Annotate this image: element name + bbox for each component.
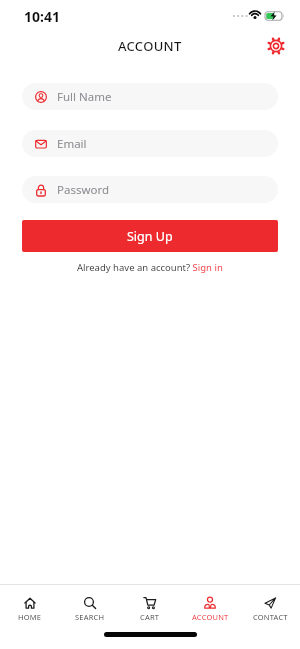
staticText: 10:41 xyxy=(24,7,60,26)
button[interactable]: Password xyxy=(22,176,278,203)
staticText: Full Name xyxy=(57,89,112,105)
button[interactable]: HOME xyxy=(0,585,60,622)
staticText: ACCOUNT xyxy=(118,37,182,55)
button[interactable] xyxy=(265,35,287,57)
button[interactable]: SEARCH xyxy=(60,585,120,622)
staticText: Email xyxy=(57,136,87,152)
staticText: SEARCH xyxy=(75,612,105,622)
button[interactable]: Sign Up xyxy=(22,220,278,252)
staticText: CONTACT xyxy=(253,612,288,622)
button[interactable]: ACCOUNT xyxy=(180,585,240,622)
staticText: CART xyxy=(140,612,160,622)
staticText: Password xyxy=(57,182,110,198)
button[interactable]: Full Name xyxy=(22,83,278,110)
staticText: Already have an account? Sign in xyxy=(77,261,223,274)
button[interactable]: CART xyxy=(120,585,180,622)
staticText: ACCOUNT xyxy=(192,612,229,622)
button[interactable]: Already have an account? Sign in xyxy=(0,261,300,274)
button[interactable]: Email xyxy=(22,130,278,157)
button[interactable]: CONTACT xyxy=(240,585,300,622)
staticText: Sign Up xyxy=(127,228,173,245)
staticText: HOME xyxy=(18,612,42,622)
